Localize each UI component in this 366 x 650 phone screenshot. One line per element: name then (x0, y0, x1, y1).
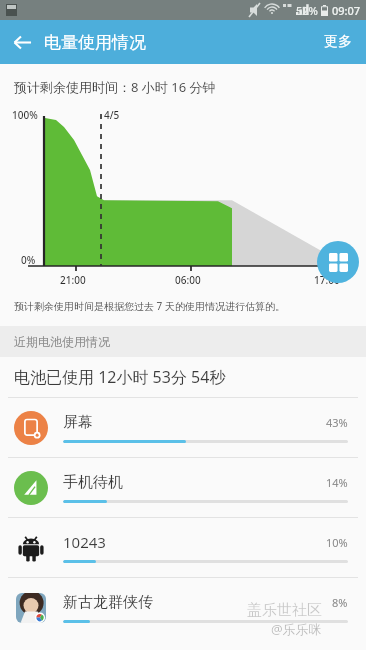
staticText: 新古龙群侠传 (63, 593, 153, 612)
staticText: 0% (21, 253, 36, 267)
staticText: 近期电池使用情况 (14, 334, 110, 349)
button[interactable]: 手机待机 (0, 458, 366, 517)
staticText: 盖乐世社区 (247, 601, 322, 620)
button[interactable]: 返回 (0, 20, 44, 64)
staticText: 预计剩余使用时间是根据您过去 7 天的使用情况进行估算的。 (14, 299, 285, 313)
staticText: @乐乐咪 (271, 620, 322, 638)
staticText: 100% (12, 108, 38, 122)
button[interactable]: 新古龙群侠传 (0, 578, 366, 637)
staticText: 52% (296, 3, 318, 18)
button[interactable]: 屏幕 (0, 398, 366, 457)
staticText: 43% (326, 415, 348, 430)
staticText: 电量使用情况 (44, 32, 146, 53)
staticText: 06:00 (175, 273, 201, 287)
button[interactable]: 10243 (0, 518, 366, 577)
staticText: 手机待机 (63, 473, 123, 492)
staticText: 4/5 (104, 108, 120, 122)
staticText: 10243 (63, 532, 106, 552)
staticText: 电池已使用 12小时 53分 54秒 (14, 366, 226, 388)
staticText: 8% (332, 595, 348, 610)
staticText: 屏幕 (63, 413, 93, 432)
staticText: 10% (326, 535, 348, 550)
staticText: 21:00 (60, 273, 86, 287)
staticText: 更多 (324, 33, 352, 51)
button[interactable]: 电池已使用 12小时 53分 54秒 (0, 357, 366, 397)
staticText: 预计剩余使用时间：8 小时 16 分钟 (14, 78, 216, 96)
staticText: 09:07 (332, 3, 361, 18)
staticText: 14% (326, 475, 348, 490)
button[interactable]: 更多 (310, 23, 366, 61)
staticText: 17:00 (314, 273, 340, 287)
button[interactable]: 应用列表 (317, 241, 359, 283)
